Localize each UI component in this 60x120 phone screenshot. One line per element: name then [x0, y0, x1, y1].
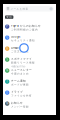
staticText: T	[6, 80, 8, 83]
staticText: メンバー登録	[11, 105, 29, 108]
staticText: N	[6, 69, 8, 72]
staticText: ニュースレター	[11, 68, 32, 72]
staticText: Google	[11, 35, 20, 38]
button[interactable]: A	[3, 45, 56, 56]
staticText: M	[6, 102, 8, 105]
staticText: ボードが更新	[11, 83, 29, 86]
staticText: 新着リリース情報	[11, 61, 35, 64]
button[interactable]: D	[3, 89, 56, 100]
staticText: P	[6, 25, 8, 28]
button[interactable]: T	[3, 78, 56, 89]
button[interactable]: 受信	[5, 15, 13, 19]
staticText: D	[6, 91, 8, 94]
staticText: ドライブ	[11, 90, 23, 94]
staticText: Amazon.co.jp	[11, 46, 27, 49]
staticText: G	[6, 36, 8, 39]
staticText: 今週のまとめ	[11, 72, 29, 75]
button[interactable]: S	[3, 56, 56, 67]
staticText: ご注文の発送	[11, 50, 29, 53]
staticText: ファイルを共有	[11, 94, 32, 97]
staticText: お知らせ	[11, 101, 23, 105]
staticText: ご利用明細のご案内	[11, 28, 38, 31]
staticText: スポティファイ	[11, 57, 32, 61]
button[interactable]: P	[3, 23, 56, 34]
button[interactable]: M	[3, 100, 56, 111]
button[interactable]: N	[3, 67, 56, 78]
staticText: メールを検索	[11, 7, 29, 10]
staticText: PayPal からのお知らせ	[11, 24, 41, 28]
staticText: 今週のおすすめ	[11, 65, 25, 68]
staticText: チーム通知	[11, 79, 26, 83]
button[interactable]: G	[3, 34, 56, 45]
staticText: A	[6, 47, 8, 50]
staticText: セキュリティ通知	[11, 39, 35, 42]
staticText: 受信	[6, 16, 12, 19]
staticText: S	[6, 58, 8, 61]
button[interactable]: Search mail	[5, 6, 54, 12]
